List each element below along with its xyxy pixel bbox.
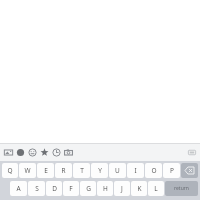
button[interactable]: J bbox=[114, 181, 130, 196]
staticText: Q bbox=[7, 166, 13, 175]
staticText: O bbox=[151, 166, 157, 175]
button[interactable]: L bbox=[148, 181, 164, 196]
staticText: F bbox=[69, 184, 73, 193]
button[interactable]: Favorites bbox=[40, 148, 49, 157]
button[interactable]: Q bbox=[2, 163, 18, 178]
button[interactable]: return bbox=[165, 181, 198, 196]
staticText: E bbox=[44, 166, 48, 175]
button[interactable]: I bbox=[127, 163, 144, 178]
staticText: T bbox=[80, 166, 84, 175]
staticText: S bbox=[35, 184, 39, 193]
button[interactable]: F bbox=[63, 181, 79, 196]
staticText: return bbox=[174, 185, 189, 192]
button[interactable]: R bbox=[55, 163, 72, 178]
button[interactable]: O bbox=[145, 163, 162, 178]
button[interactable]: T bbox=[73, 163, 90, 178]
button[interactable]: U bbox=[109, 163, 126, 178]
staticText: I bbox=[134, 166, 137, 175]
button[interactable]: Sticker bbox=[16, 148, 25, 157]
button[interactable]: Recents bbox=[52, 148, 61, 157]
button[interactable]: G bbox=[80, 181, 96, 196]
button[interactable]: S bbox=[28, 181, 45, 196]
button[interactable]: P bbox=[163, 163, 180, 178]
staticText: U bbox=[115, 166, 120, 175]
button[interactable]: Y bbox=[91, 163, 108, 178]
button[interactable]: W bbox=[19, 163, 36, 178]
button[interactable]: A bbox=[10, 181, 27, 196]
staticText: W bbox=[24, 166, 31, 175]
button[interactable]: Camera bbox=[64, 148, 73, 157]
staticText: R bbox=[61, 166, 66, 175]
button[interactable]: D bbox=[46, 181, 62, 196]
staticText: Y bbox=[98, 166, 102, 175]
staticText: L bbox=[154, 184, 158, 193]
button[interactable]: K bbox=[131, 181, 147, 196]
button[interactable]: E bbox=[37, 163, 54, 178]
button[interactable]: Emoji bbox=[28, 148, 37, 157]
staticText: H bbox=[103, 184, 108, 193]
staticText: J bbox=[121, 184, 123, 193]
button[interactable]: More options bbox=[188, 149, 196, 156]
staticText: D bbox=[52, 184, 57, 193]
button[interactable]: Backspace bbox=[181, 163, 198, 178]
staticText: G bbox=[86, 184, 91, 193]
staticText: A bbox=[16, 184, 21, 193]
button[interactable]: Photos bbox=[4, 148, 13, 157]
staticText: P bbox=[170, 166, 174, 175]
staticText: K bbox=[137, 184, 142, 193]
button[interactable]: H bbox=[97, 181, 113, 196]
